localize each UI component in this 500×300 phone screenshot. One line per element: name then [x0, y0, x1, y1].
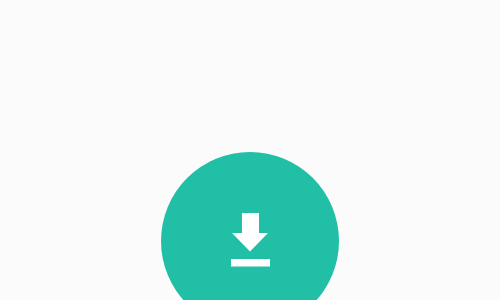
button[interactable]: Download	[0, 0, 500, 300]
